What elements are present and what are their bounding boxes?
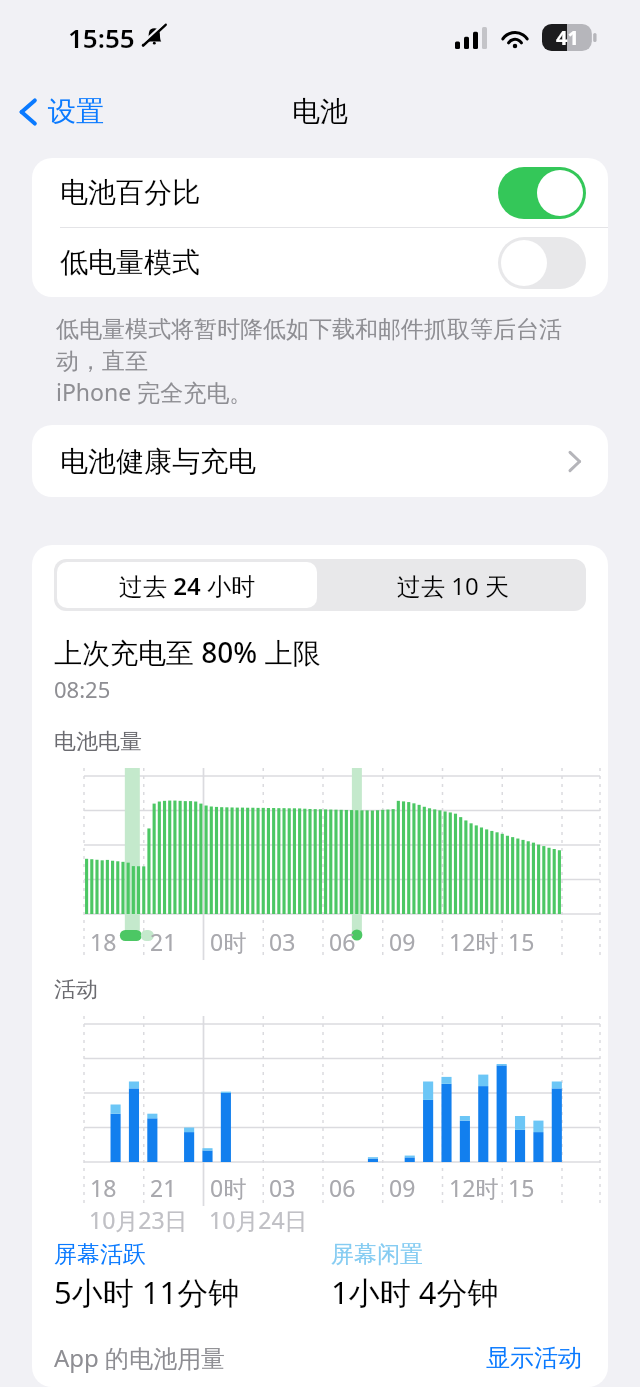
staticText: 18 bbox=[90, 926, 117, 957]
staticText: 过去 24 小时 bbox=[119, 569, 255, 602]
staticText: 09 bbox=[389, 926, 416, 957]
staticText: 5小时 11分钟 bbox=[54, 1271, 240, 1313]
staticText: 12时 bbox=[449, 926, 499, 957]
button[interactable]: 已关闭 bbox=[498, 237, 586, 289]
staticText: 电池健康与充电 bbox=[60, 444, 256, 479]
staticText: 15:55 bbox=[68, 20, 135, 55]
staticText: 06 bbox=[329, 1172, 356, 1203]
staticText: 屏幕闲置 bbox=[331, 1240, 423, 1269]
staticText: 电池百分比 bbox=[60, 175, 200, 210]
staticText: 15 bbox=[508, 1172, 535, 1203]
staticText: 电池 bbox=[292, 94, 348, 129]
staticText: 0时 bbox=[210, 1172, 247, 1203]
staticText: 03 bbox=[269, 926, 296, 957]
staticText: 过去 10 天 bbox=[397, 569, 509, 602]
staticText: 12时 bbox=[449, 1172, 499, 1203]
staticText: 低电量模式 bbox=[60, 245, 200, 280]
staticText: 08:25 bbox=[54, 674, 111, 704]
staticText: 21 bbox=[150, 926, 177, 957]
button[interactable]: 过去 24 小时 bbox=[57, 562, 317, 608]
button[interactable]: 已开启 bbox=[498, 167, 586, 219]
staticText: 上次充电至 80% 上限 bbox=[54, 633, 321, 671]
staticText: 15 bbox=[508, 926, 535, 957]
button[interactable]: 设置 bbox=[0, 86, 116, 137]
staticText: 活动 bbox=[54, 976, 98, 1004]
staticText: 显示活动 bbox=[486, 1343, 582, 1371]
staticText: 41 bbox=[556, 24, 579, 51]
staticText: 设置 bbox=[48, 94, 104, 129]
button[interactable]: 电池健康与充电 bbox=[32, 425, 608, 497]
staticText: 18 bbox=[90, 1172, 117, 1203]
button[interactable]: 过去 10 天 bbox=[320, 559, 586, 611]
button[interactable]: 低电量模式 bbox=[32, 228, 608, 297]
staticText: 03 bbox=[269, 1172, 296, 1203]
staticText: App 的电池用量 bbox=[54, 1341, 226, 1374]
staticText: 电池电量 bbox=[54, 728, 142, 756]
staticText: 06 bbox=[329, 926, 356, 957]
staticText: 1小时 4分钟 bbox=[331, 1271, 499, 1313]
staticText: 10月23日 bbox=[89, 1204, 188, 1235]
staticText: 屏幕活跃 bbox=[54, 1240, 146, 1269]
staticText: 0时 bbox=[210, 926, 247, 957]
staticText: 09 bbox=[389, 1172, 416, 1203]
staticText: iPhone 完全充电。 bbox=[56, 376, 253, 407]
staticText: 10月24日 bbox=[209, 1204, 308, 1235]
staticText: 21 bbox=[150, 1172, 177, 1203]
staticText: 低电量模式将暂时降低如下载和邮件抓取等后台活动，直至 bbox=[56, 315, 594, 376]
button[interactable]: 电池百分比 bbox=[32, 158, 608, 227]
button[interactable]: 显示活动 bbox=[482, 1339, 586, 1375]
